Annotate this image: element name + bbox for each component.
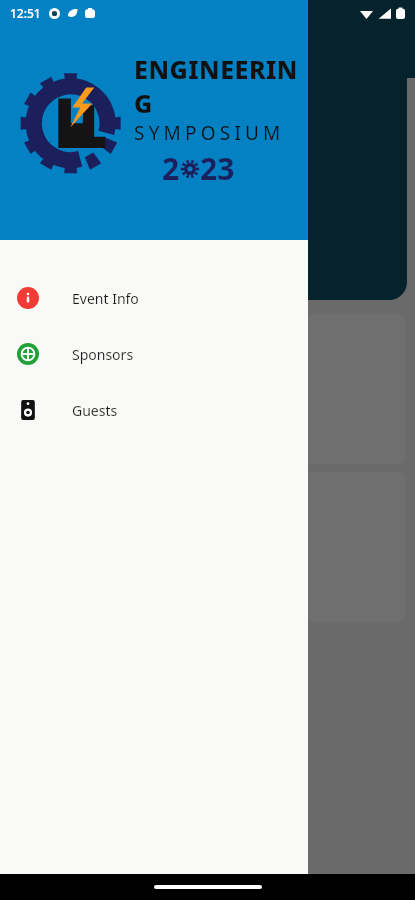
button[interactable]: Guests <box>10 314 405 464</box>
staticText: ENGINEERING <box>134 52 298 120</box>
staticText: SYMPOSIUM <box>134 120 285 146</box>
button[interactable]: Sponsors <box>0 338 308 370</box>
staticText: Guests <box>38 410 90 432</box>
other: Sponsors <box>17 343 39 365</box>
staticText: ENGINEERING <box>28 108 134 128</box>
staticText: 23 <box>200 148 235 189</box>
staticText: 12:51 <box>10 5 41 21</box>
button[interactable]: Guests <box>0 394 308 426</box>
staticText: Agriculture, Food & Climate <box>28 217 172 272</box>
other: Guests <box>17 399 39 421</box>
staticText: Event Info <box>72 289 139 308</box>
staticText: 2023 <box>28 143 65 165</box>
button[interactable]: ENGINEERING <box>8 78 407 300</box>
staticText: 2 <box>162 148 180 189</box>
button[interactable]: Event Info <box>0 282 308 314</box>
other: Event Info <box>17 287 39 309</box>
staticText: Sponsors <box>72 345 134 364</box>
button[interactable]: Sponsors <box>10 472 405 622</box>
staticText: SYMPOSIUM <box>28 128 112 143</box>
staticText: Guests <box>72 401 118 420</box>
